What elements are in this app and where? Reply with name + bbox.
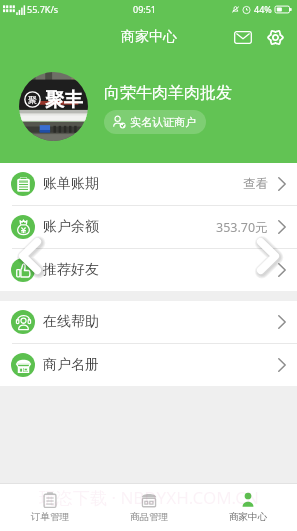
- staticText: 账户余额: [43, 218, 99, 236]
- staticText: 玩恣下载 · NBDYXH.COM.CN: [39, 486, 259, 509]
- staticText: 商品管理: [130, 511, 168, 523]
- button[interactable]: 商品管理: [99, 484, 198, 531]
- staticText: 实名认证商户: [130, 115, 196, 129]
- staticText: 聚丰: [45, 88, 83, 112]
- button[interactable]: Shop avatar: [19, 72, 88, 141]
- button[interactable]: 推荐好友: [0, 249, 297, 291]
- button[interactable]: Settings: [261, 23, 289, 51]
- staticText: 推荐好友: [43, 261, 99, 279]
- button[interactable]: 实名认证商户: [104, 110, 206, 134]
- staticText: 商户名册: [43, 356, 99, 374]
- button[interactable]: Messages: [229, 23, 257, 51]
- button[interactable]: 商户名册: [0, 344, 297, 386]
- button[interactable]: 账单账期: [0, 163, 297, 205]
- button[interactable]: 在线帮助: [0, 301, 297, 343]
- staticText: 353.70元: [216, 219, 268, 236]
- staticText: 商家中心: [229, 511, 267, 523]
- button[interactable]: 订单管理: [0, 484, 99, 531]
- staticText: 44%: [254, 3, 272, 15]
- staticText: 订单管理: [31, 511, 69, 523]
- staticText: 55.7K/s: [27, 3, 59, 15]
- staticText: 商家中心: [121, 28, 177, 46]
- staticText: 向荣牛肉羊肉批发: [104, 83, 232, 103]
- staticText: 在线帮助: [43, 313, 99, 331]
- button[interactable]: 商家中心: [198, 484, 297, 531]
- button[interactable]: 账户余额: [0, 206, 297, 248]
- staticText: 聚: [28, 94, 37, 105]
- staticText: 09:51: [133, 3, 157, 15]
- staticText: 账单账期: [43, 175, 99, 193]
- staticText: 查看: [243, 176, 268, 192]
